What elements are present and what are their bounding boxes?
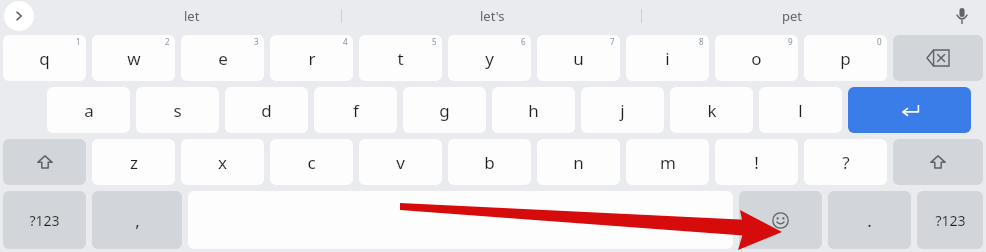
staticText: r [308,47,316,70]
staticText: 8 [699,36,704,47]
staticText: e [218,47,228,70]
button[interactable]: ?123 [3,191,86,249]
staticText: . [867,209,872,232]
button[interactable]: , [92,191,182,249]
button[interactable]: ?123 [917,191,983,249]
button[interactable]: f [314,87,397,133]
button[interactable]: let's [342,0,642,32]
staticText: g [439,99,450,122]
button[interactable]: b [448,139,531,185]
button[interactable]: u [537,35,620,81]
staticText: ! [754,151,759,174]
button[interactable]: w [92,35,175,81]
button[interactable]: o [715,35,798,81]
staticText: m [660,151,676,174]
staticText: 2 [165,36,170,47]
staticText: k [707,99,717,122]
button[interactable]: g [403,87,486,133]
button[interactable]: q [3,35,86,81]
button[interactable]: pet [642,0,942,32]
button[interactable]: Shift [3,139,86,185]
staticText: ? [842,151,850,174]
staticText: z [130,151,138,174]
staticText: 7 [610,36,615,47]
staticText: v [396,151,405,174]
staticText: b [484,151,495,174]
button[interactable]: Expand toolbar [4,1,34,31]
staticText: s [173,99,182,122]
staticText: , [135,209,140,232]
staticText: 1 [76,36,81,47]
staticText: 3 [254,36,259,47]
button[interactable]: x [181,139,264,185]
staticText: o [751,47,762,70]
button[interactable]: p [804,35,887,81]
staticText: ?123 [935,211,966,230]
staticText: 5 [432,36,437,47]
button[interactable]: t [359,35,442,81]
staticText: h [528,99,539,122]
staticText: x [218,151,227,174]
staticText: 0 [877,36,882,47]
button[interactable]: Emoji [739,191,822,249]
staticText: u [573,47,584,70]
button[interactable]: z [92,139,175,185]
button[interactable]: ? [804,139,887,185]
staticText: i [665,47,670,70]
staticText: let's [480,7,505,25]
staticText: a [84,99,94,122]
staticText: 9 [788,36,793,47]
button[interactable]: m [626,139,709,185]
staticText: l [798,99,803,122]
button[interactable]: r [270,35,353,81]
button[interactable]: ! [715,139,798,185]
button[interactable]: y [448,35,531,81]
button[interactable]: Voice input [948,2,976,30]
button[interactable]: Enter [848,87,971,133]
button[interactable]: c [270,139,353,185]
button[interactable]: a [47,87,130,133]
staticText: p [840,47,851,70]
staticText: t [397,47,404,70]
button[interactable]: k [670,87,753,133]
button[interactable]: i [626,35,709,81]
staticText: n [573,151,584,174]
button[interactable]: j [581,87,664,133]
staticText: pet [782,7,803,25]
staticText: q [39,47,50,70]
button[interactable]: let [42,0,342,32]
button[interactable]: Backspace [893,35,983,81]
button[interactable]: Shift [893,139,983,185]
button[interactable]: . [828,191,911,249]
staticText: 4 [343,36,348,47]
button[interactable]: v [359,139,442,185]
staticText: w [127,47,141,70]
button[interactable]: e [181,35,264,81]
staticText: c [307,151,316,174]
staticText: f [353,99,359,122]
staticText: let [184,7,200,25]
staticText: 6 [521,36,526,47]
staticText: ?123 [29,211,60,230]
staticText: y [485,47,494,70]
button[interactable]: Space [188,191,733,249]
button[interactable]: h [492,87,575,133]
button[interactable]: s [136,87,219,133]
button[interactable]: l [759,87,842,133]
button[interactable]: d [225,87,308,133]
button[interactable]: n [537,139,620,185]
staticText: d [261,99,272,122]
staticText: j [620,99,625,122]
